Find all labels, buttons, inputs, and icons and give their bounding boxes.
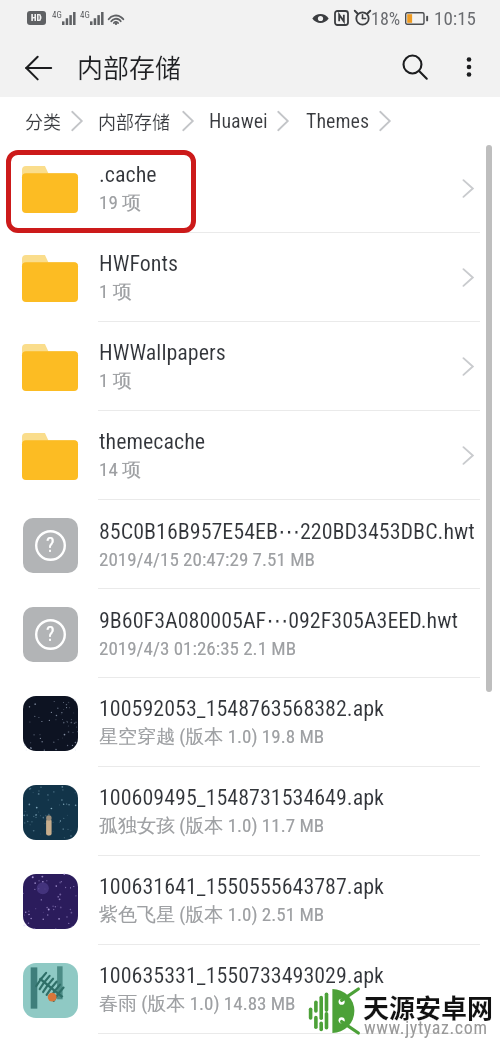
staticText: 孤独女孩 (版本 1.0) 11.7 MB bbox=[99, 814, 325, 838]
button[interactable]: ? bbox=[0, 589, 500, 678]
button[interactable]: HWFonts bbox=[0, 233, 500, 322]
staticText: 2019/4/3 01:26:35 2.1 MB bbox=[99, 637, 297, 659]
staticText: 内部存储 bbox=[77, 48, 182, 86]
button[interactable]: 100635331_1550733493029.apk bbox=[0, 945, 500, 1034]
button[interactable]: HWWallpapers bbox=[0, 322, 500, 411]
staticText: 100609495_1548731534649.apk bbox=[99, 785, 384, 811]
staticText: 100631641_1550555643787.apk bbox=[99, 874, 384, 900]
staticText: 1 项 bbox=[99, 280, 132, 304]
staticText: 100592053_1548763568382.apk bbox=[99, 696, 384, 722]
staticText: 10:15 bbox=[434, 7, 476, 29]
staticText: 100635331_1550733493029.apk bbox=[99, 963, 384, 989]
button[interactable]: 100631641_1550555643787.apk bbox=[0, 856, 500, 945]
staticText: 4G bbox=[80, 10, 90, 21]
staticText: 紫色飞星 (版本 1.0) 2.51 MB bbox=[99, 903, 325, 927]
button[interactable]: ? bbox=[0, 500, 500, 589]
staticText: 2019/4/15 20:47:29 7.51 MB bbox=[99, 548, 315, 570]
staticText: 分类 bbox=[25, 108, 61, 134]
button[interactable]: Search bbox=[388, 40, 442, 94]
staticText: .cache bbox=[99, 162, 157, 188]
button[interactable]: 100592053_1548763568382.apk bbox=[0, 678, 500, 767]
staticText: 4G bbox=[52, 10, 62, 21]
staticText: 18% bbox=[371, 8, 401, 29]
staticText: HWWallpapers bbox=[99, 340, 226, 366]
staticText: themecache bbox=[99, 429, 206, 455]
staticText: HWFonts bbox=[99, 251, 178, 277]
staticText: 内部存储 bbox=[98, 108, 170, 134]
button[interactable]: 100609495_1548731534649.apk bbox=[0, 767, 500, 856]
staticText: www.jytyaz.com bbox=[364, 1017, 488, 1038]
button[interactable]: themecache bbox=[0, 411, 500, 500]
staticText: 春雨 (版本 1.0) 14.83 MB bbox=[99, 992, 296, 1016]
staticText: 1 项 bbox=[99, 369, 132, 393]
staticText: 19 项 bbox=[99, 191, 142, 215]
staticText: 天源安卓网 bbox=[363, 988, 494, 1026]
staticText: Huawei bbox=[209, 109, 268, 132]
button[interactable]: Huawei bbox=[209, 109, 268, 132]
staticText: 星空穿越 (版本 1.0) 19.8 MB bbox=[99, 725, 325, 749]
staticText: ? bbox=[46, 533, 55, 556]
staticText: HD bbox=[31, 13, 42, 24]
button[interactable]: 分类 bbox=[25, 108, 61, 134]
staticText: ? bbox=[46, 622, 55, 645]
staticText: 85C0B16B957E54EB⋯220BD3453DBC.hwt bbox=[99, 519, 475, 545]
button[interactable]: Back bbox=[13, 42, 63, 92]
button[interactable]: .cache bbox=[0, 144, 500, 233]
staticText: 14 项 bbox=[99, 458, 142, 482]
button[interactable]: More options bbox=[442, 40, 496, 94]
button[interactable]: Themes bbox=[306, 109, 369, 132]
staticText: Themes bbox=[306, 109, 369, 132]
staticText: 9B60F3A080005AF⋯092F305A3EED.hwt bbox=[99, 608, 459, 634]
button[interactable]: 内部存储 bbox=[98, 108, 170, 134]
